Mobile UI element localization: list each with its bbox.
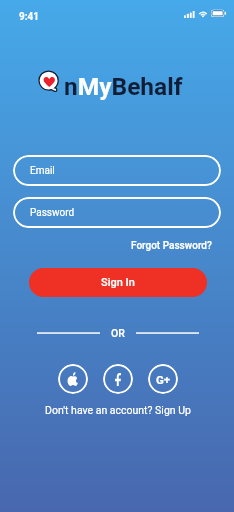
staticText: nMyBehalf — [64, 72, 183, 101]
staticText: Sign In — [101, 276, 135, 289]
staticText: Password — [30, 207, 75, 219]
button[interactable]: Sign in with Facebook — [103, 364, 133, 394]
staticText: OR — [111, 327, 125, 339]
staticText: Email — [30, 165, 55, 177]
staticText: 9:41 — [19, 11, 40, 23]
button[interactable]: Don't have an account? Sign Up — [1, 404, 234, 416]
button[interactable]: Forgot Password? — [131, 240, 212, 252]
button[interactable]: Email — [13, 155, 221, 186]
button[interactable]: Sign In — [29, 268, 207, 297]
button[interactable]: Sign in with Apple — [58, 364, 88, 394]
button[interactable]: Sign in with Google — [148, 364, 178, 394]
staticText: Don't have an account? Sign Up — [45, 404, 191, 416]
button[interactable]: Password — [13, 197, 221, 228]
staticText: G+ — [156, 373, 171, 386]
staticText: Forgot Password? — [131, 240, 212, 252]
